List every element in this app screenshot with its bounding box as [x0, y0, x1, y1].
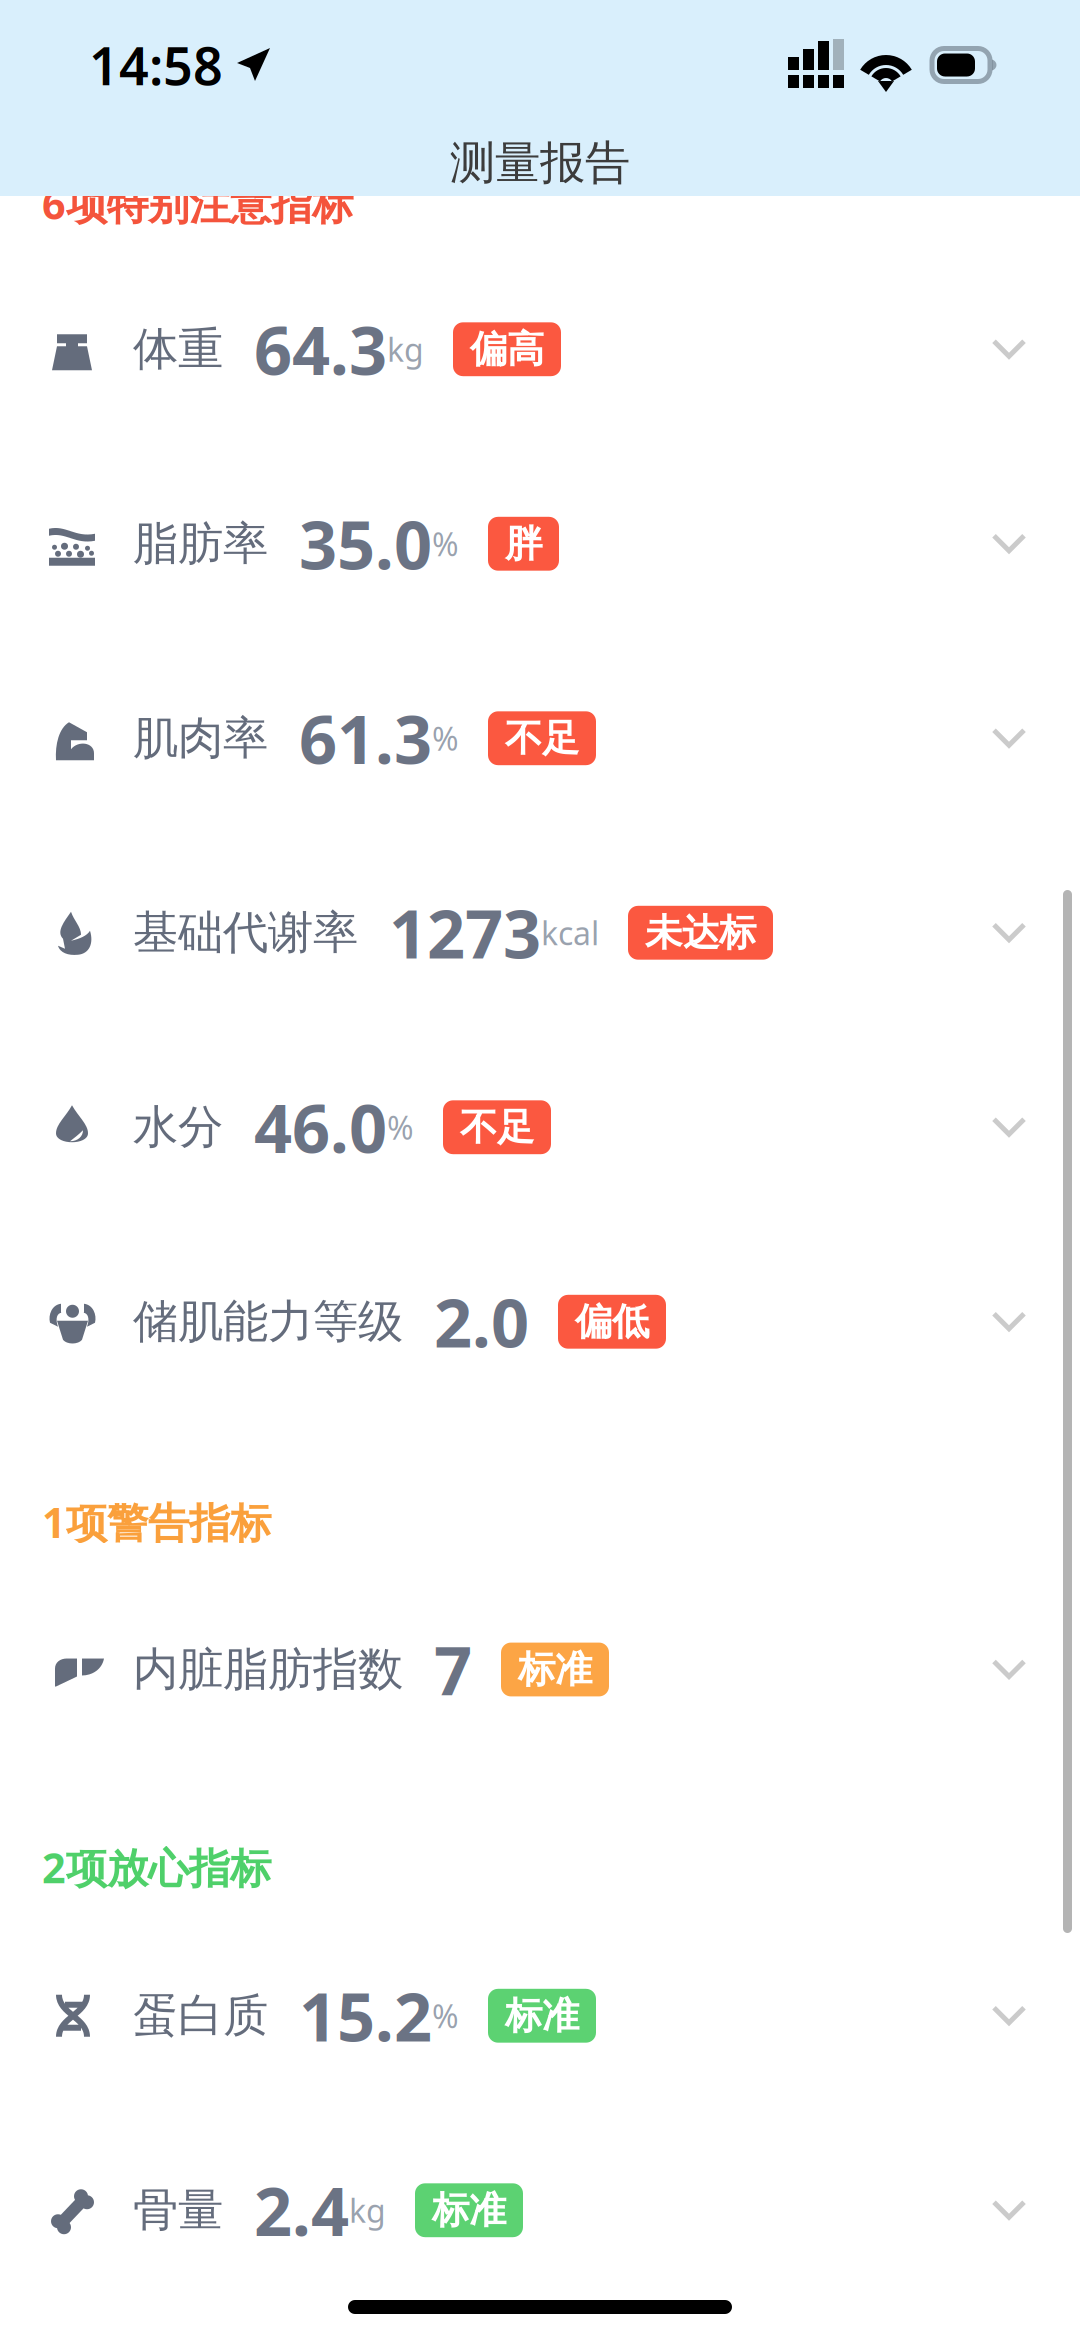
staticText: 标准 — [518, 1647, 592, 1692]
staticText: 2.4 — [254, 2166, 349, 2254]
staticText: 未达标 — [645, 910, 756, 956]
staticText: kg — [349, 2189, 386, 2231]
staticText: % — [432, 717, 459, 759]
staticText: 61.3 — [299, 694, 432, 782]
staticText: 标准 — [432, 2187, 506, 2233]
staticText: 2项放心指标 — [42, 1840, 271, 1895]
staticText: 肌肉率 — [133, 710, 268, 766]
staticText: 14:58 — [89, 30, 223, 100]
staticText: 胖 — [505, 521, 542, 567]
staticText: 7 — [434, 1625, 472, 1714]
staticText: % — [432, 1994, 459, 2037]
button[interactable]: 内脏脂肪指数 — [0, 1572, 1080, 1767]
staticText: 脂肪率 — [133, 516, 268, 572]
staticText: 1273 — [389, 888, 541, 977]
staticText: 骨量 — [133, 2182, 223, 2238]
staticText: 测量报告 — [450, 135, 630, 191]
staticText: kg — [387, 328, 424, 370]
staticText: % — [432, 522, 459, 565]
staticText: 蛋白质 — [133, 1988, 268, 2044]
staticText: 1项警告指标 — [42, 1495, 271, 1549]
staticText: 35.0 — [299, 499, 432, 588]
button[interactable]: 蛋白质 — [0, 1918, 1080, 2113]
staticText: kcal — [541, 911, 599, 954]
button[interactable]: 储肌能力等级 — [0, 1224, 1080, 1419]
staticText: 64.3 — [254, 305, 387, 393]
button[interactable]: 基础代谢率 — [0, 835, 1080, 1030]
button[interactable]: 肌肉率 — [0, 641, 1080, 835]
button[interactable]: 骨量 — [0, 2113, 1080, 2307]
staticText: 偏低 — [575, 1299, 649, 1345]
staticText: 不足 — [460, 1104, 534, 1150]
staticText: % — [387, 1106, 414, 1148]
button[interactable]: 水分 — [0, 1030, 1080, 1224]
staticText: 体重 — [133, 321, 223, 377]
staticText: 6项特别注意指标 — [42, 176, 353, 231]
staticText: 水分 — [133, 1099, 223, 1155]
staticText: 偏高 — [470, 326, 544, 372]
staticText: 不足 — [505, 715, 579, 761]
staticText: 标准 — [505, 1993, 579, 2039]
staticText: 内脏脂肪指数 — [133, 1642, 403, 1697]
staticText: 46.0 — [254, 1083, 387, 1171]
button[interactable]: 脂肪率 — [0, 446, 1080, 641]
button[interactable]: 体重 — [0, 252, 1080, 446]
staticText: 基础代谢率 — [133, 905, 358, 961]
staticText: 储肌能力等级 — [133, 1294, 403, 1350]
staticText: 2.0 — [434, 1277, 529, 1366]
staticText: 15.2 — [299, 1971, 432, 2060]
